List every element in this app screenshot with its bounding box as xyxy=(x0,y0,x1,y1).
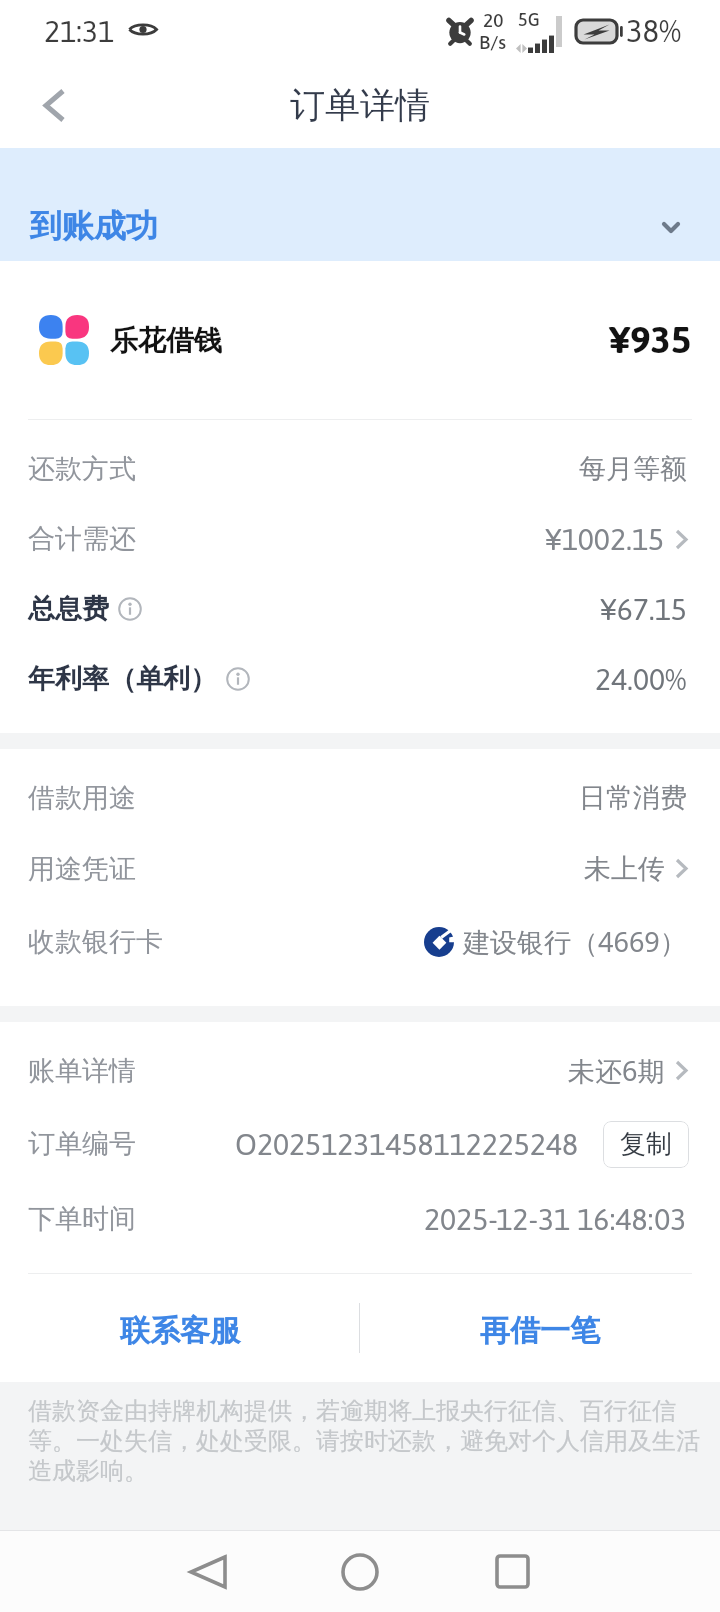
staticText: ¥67.15 xyxy=(600,592,687,626)
staticText: 年利率（单利） xyxy=(28,662,217,696)
staticText: 收款银行卡 xyxy=(28,925,163,959)
staticText: 用途凭证 xyxy=(28,852,136,886)
staticText: B/s xyxy=(479,31,507,53)
button[interactable]: Back xyxy=(0,62,100,148)
staticText: 38% xyxy=(626,13,681,49)
staticText: 等。一处失信，处处受限。请按时还款，避免对个人信用及生活 xyxy=(28,1426,700,1456)
staticText: 账单详情 xyxy=(28,1054,136,1088)
button[interactable]: 账单详情 xyxy=(0,1035,720,1106)
staticText: 建设银行（4669） xyxy=(463,923,687,960)
staticText: 造成影响。 xyxy=(28,1456,148,1486)
button[interactable]: 复制 xyxy=(603,1121,689,1168)
button[interactable]: 再借一笔 xyxy=(360,1274,720,1382)
staticText: 合计需还 xyxy=(28,522,136,556)
staticText: 总息费 xyxy=(28,592,109,626)
staticText: 借款资金由持牌机构提供，若逾期将上报央行征信、百行征信 xyxy=(28,1396,676,1426)
staticText: 2025-12-31 16:48:03 xyxy=(424,1202,687,1236)
button[interactable]: 用途凭证 xyxy=(0,833,720,904)
staticText: O20251231458112225248 xyxy=(235,1127,578,1161)
staticText: 联系客服 xyxy=(120,1312,240,1350)
staticText: 未还6期 xyxy=(568,1052,665,1089)
staticText: 下单时间 xyxy=(28,1202,136,1236)
staticText: 借款用途 xyxy=(28,781,136,815)
staticText: 未上传 xyxy=(584,852,665,886)
staticText: 复制 xyxy=(620,1128,672,1161)
staticText: 每月等额 xyxy=(579,452,687,486)
button[interactable]: Recents xyxy=(456,1531,568,1612)
staticText: ¥1002.15 xyxy=(545,522,665,556)
button[interactable]: Back xyxy=(152,1531,264,1612)
staticText: 订单详情 xyxy=(290,83,430,127)
staticText: 21:31 xyxy=(44,14,115,48)
button[interactable]: 到账成功 xyxy=(0,148,720,261)
button[interactable]: 联系客服 xyxy=(0,1274,359,1382)
staticText: 再借一笔 xyxy=(480,1312,600,1350)
staticText: 还款方式 xyxy=(28,452,136,486)
button[interactable]: 年利率（单利） xyxy=(0,644,720,714)
staticText: 20 xyxy=(483,9,504,31)
staticText: 24.00% xyxy=(595,662,687,696)
button[interactable]: 总息费 xyxy=(0,574,720,644)
button[interactable]: 收款银行卡 xyxy=(0,904,720,979)
staticText: 日常消费 xyxy=(579,781,687,815)
staticText: 到账成功 xyxy=(30,206,158,246)
staticText: ¥935 xyxy=(609,318,692,362)
button[interactable]: 下单时间 xyxy=(0,1182,720,1256)
button[interactable]: 还款方式 xyxy=(0,434,720,504)
button[interactable]: 借款用途 xyxy=(0,762,720,833)
button[interactable]: Home xyxy=(304,1531,416,1612)
staticText: 订单编号 xyxy=(28,1127,136,1161)
button[interactable]: 合计需还 xyxy=(0,504,720,574)
staticText: 乐花借钱 xyxy=(110,323,222,358)
staticText: 5G xyxy=(518,9,540,30)
